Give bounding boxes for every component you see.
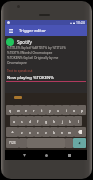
staticText: Text to speak out (7, 69, 33, 73)
button[interactable]: Recent apps (65, 151, 73, 159)
staticText: %TITLE% (by/at) %ARTIST% by %TITLE% (7, 46, 66, 50)
staticText: c (37, 130, 39, 135)
staticText: w (17, 108, 20, 113)
staticText: m (68, 130, 72, 135)
staticText: q (9, 108, 12, 113)
button[interactable]: y (46, 105, 54, 115)
staticText: %TEXT% (Words) Onomatopee (7, 51, 53, 55)
button[interactable]: a (10, 116, 18, 126)
staticText: Onomatopee (7, 61, 27, 65)
staticText: n (61, 130, 64, 135)
button[interactable]: n (58, 127, 66, 137)
staticText: %TOKEN% (by/at) Originally by me (7, 56, 59, 60)
button[interactable]: Open navigation menu (5, 25, 87, 36)
button[interactable]: i (62, 105, 70, 115)
staticText: h (53, 119, 56, 124)
button[interactable]: w (14, 105, 22, 115)
staticText: 10:24 (76, 20, 85, 25)
button[interactable]: s (18, 116, 26, 126)
button[interactable]: Suggestion (14, 96, 22, 99)
staticText: t (41, 108, 43, 113)
button[interactable]: t (38, 105, 46, 115)
button[interactable]: z (18, 127, 26, 137)
button[interactable]: b (50, 127, 58, 137)
button[interactable]: v (42, 127, 50, 137)
button[interactable]: e (22, 105, 30, 115)
staticText: y (49, 108, 51, 113)
staticText: g (45, 119, 48, 124)
staticText: o (73, 108, 76, 113)
button[interactable]: Shift (6, 127, 18, 137)
staticText: s (21, 119, 23, 124)
staticText: k (69, 119, 71, 124)
button[interactable]: Open navigation menu (7, 27, 14, 34)
button[interactable]: d (26, 116, 34, 126)
staticText: l (78, 119, 79, 124)
staticText: d (29, 119, 32, 124)
button[interactable]: o (70, 105, 78, 115)
button[interactable]: Emoji (19, 138, 27, 148)
staticText: a (13, 119, 15, 124)
staticText: v (45, 130, 47, 135)
staticText: p (81, 108, 84, 113)
staticText: f (37, 119, 39, 124)
button[interactable]: ?123 (6, 138, 19, 148)
button[interactable]: p (78, 105, 86, 115)
button[interactable]: Backspace (74, 127, 86, 137)
button[interactable]: u (54, 105, 62, 115)
staticText: r (33, 108, 35, 113)
button[interactable]: g (42, 116, 50, 126)
staticText: x (29, 130, 31, 135)
button[interactable]: h (50, 116, 58, 126)
staticText: i (66, 108, 67, 113)
button[interactable]: Back (20, 151, 28, 159)
button[interactable]: Enter (73, 138, 86, 148)
button[interactable]: Home (42, 151, 50, 159)
button[interactable]: Period (65, 138, 73, 148)
button[interactable]: k (66, 116, 74, 126)
button[interactable]: m (66, 127, 74, 137)
button[interactable]: Spotify (6, 37, 87, 47)
button[interactable]: j (58, 116, 66, 126)
button[interactable]: q (6, 105, 14, 115)
button[interactable]: x (26, 127, 34, 137)
staticText: Spotify (17, 39, 32, 45)
staticText: z (21, 130, 23, 135)
staticText: Trigger editor (19, 28, 47, 34)
staticText: b (53, 130, 56, 135)
staticText: Now playing %TOKEN% (7, 75, 54, 81)
button[interactable]: r (30, 105, 38, 115)
staticText: e (25, 108, 27, 113)
button[interactable]: c (34, 127, 42, 137)
staticText: u (57, 108, 60, 113)
staticText: j (62, 119, 63, 124)
button[interactable]: f (34, 116, 42, 126)
staticText: ?123 (9, 141, 16, 145)
button[interactable]: l (74, 116, 82, 126)
